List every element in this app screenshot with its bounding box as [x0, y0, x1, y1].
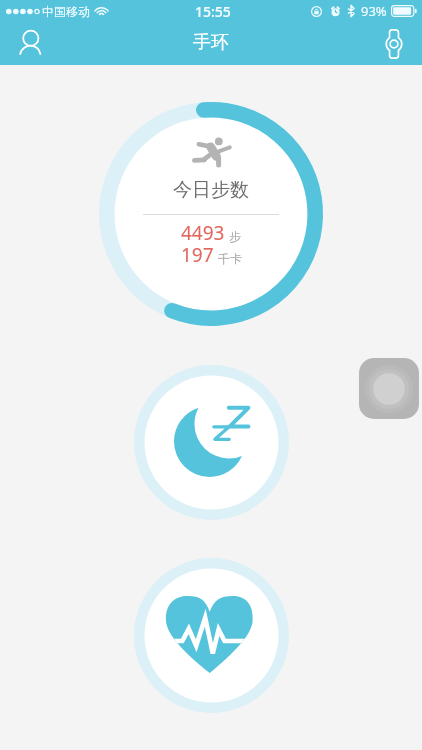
- staticText: 今日步数: [99, 178, 323, 202]
- staticText: 千卡: [218, 251, 242, 266]
- staticText: 197: [181, 242, 214, 268]
- staticText: 手环: [193, 31, 229, 54]
- staticText: 中国移动: [42, 4, 90, 19]
- staticText: 4493: [181, 220, 225, 246]
- button[interactable]: Device: [374, 24, 414, 64]
- button[interactable]: Sleep: [134, 365, 289, 520]
- staticText: 步: [229, 229, 241, 244]
- button[interactable]: Heart rate: [134, 558, 289, 713]
- staticText: 15:55: [195, 2, 231, 21]
- button[interactable]: 今日步数: [99, 102, 323, 326]
- staticText: 93%: [361, 2, 387, 20]
- button[interactable]: Profile: [11, 24, 51, 64]
- button[interactable]: Assistive Touch: [359, 358, 419, 419]
